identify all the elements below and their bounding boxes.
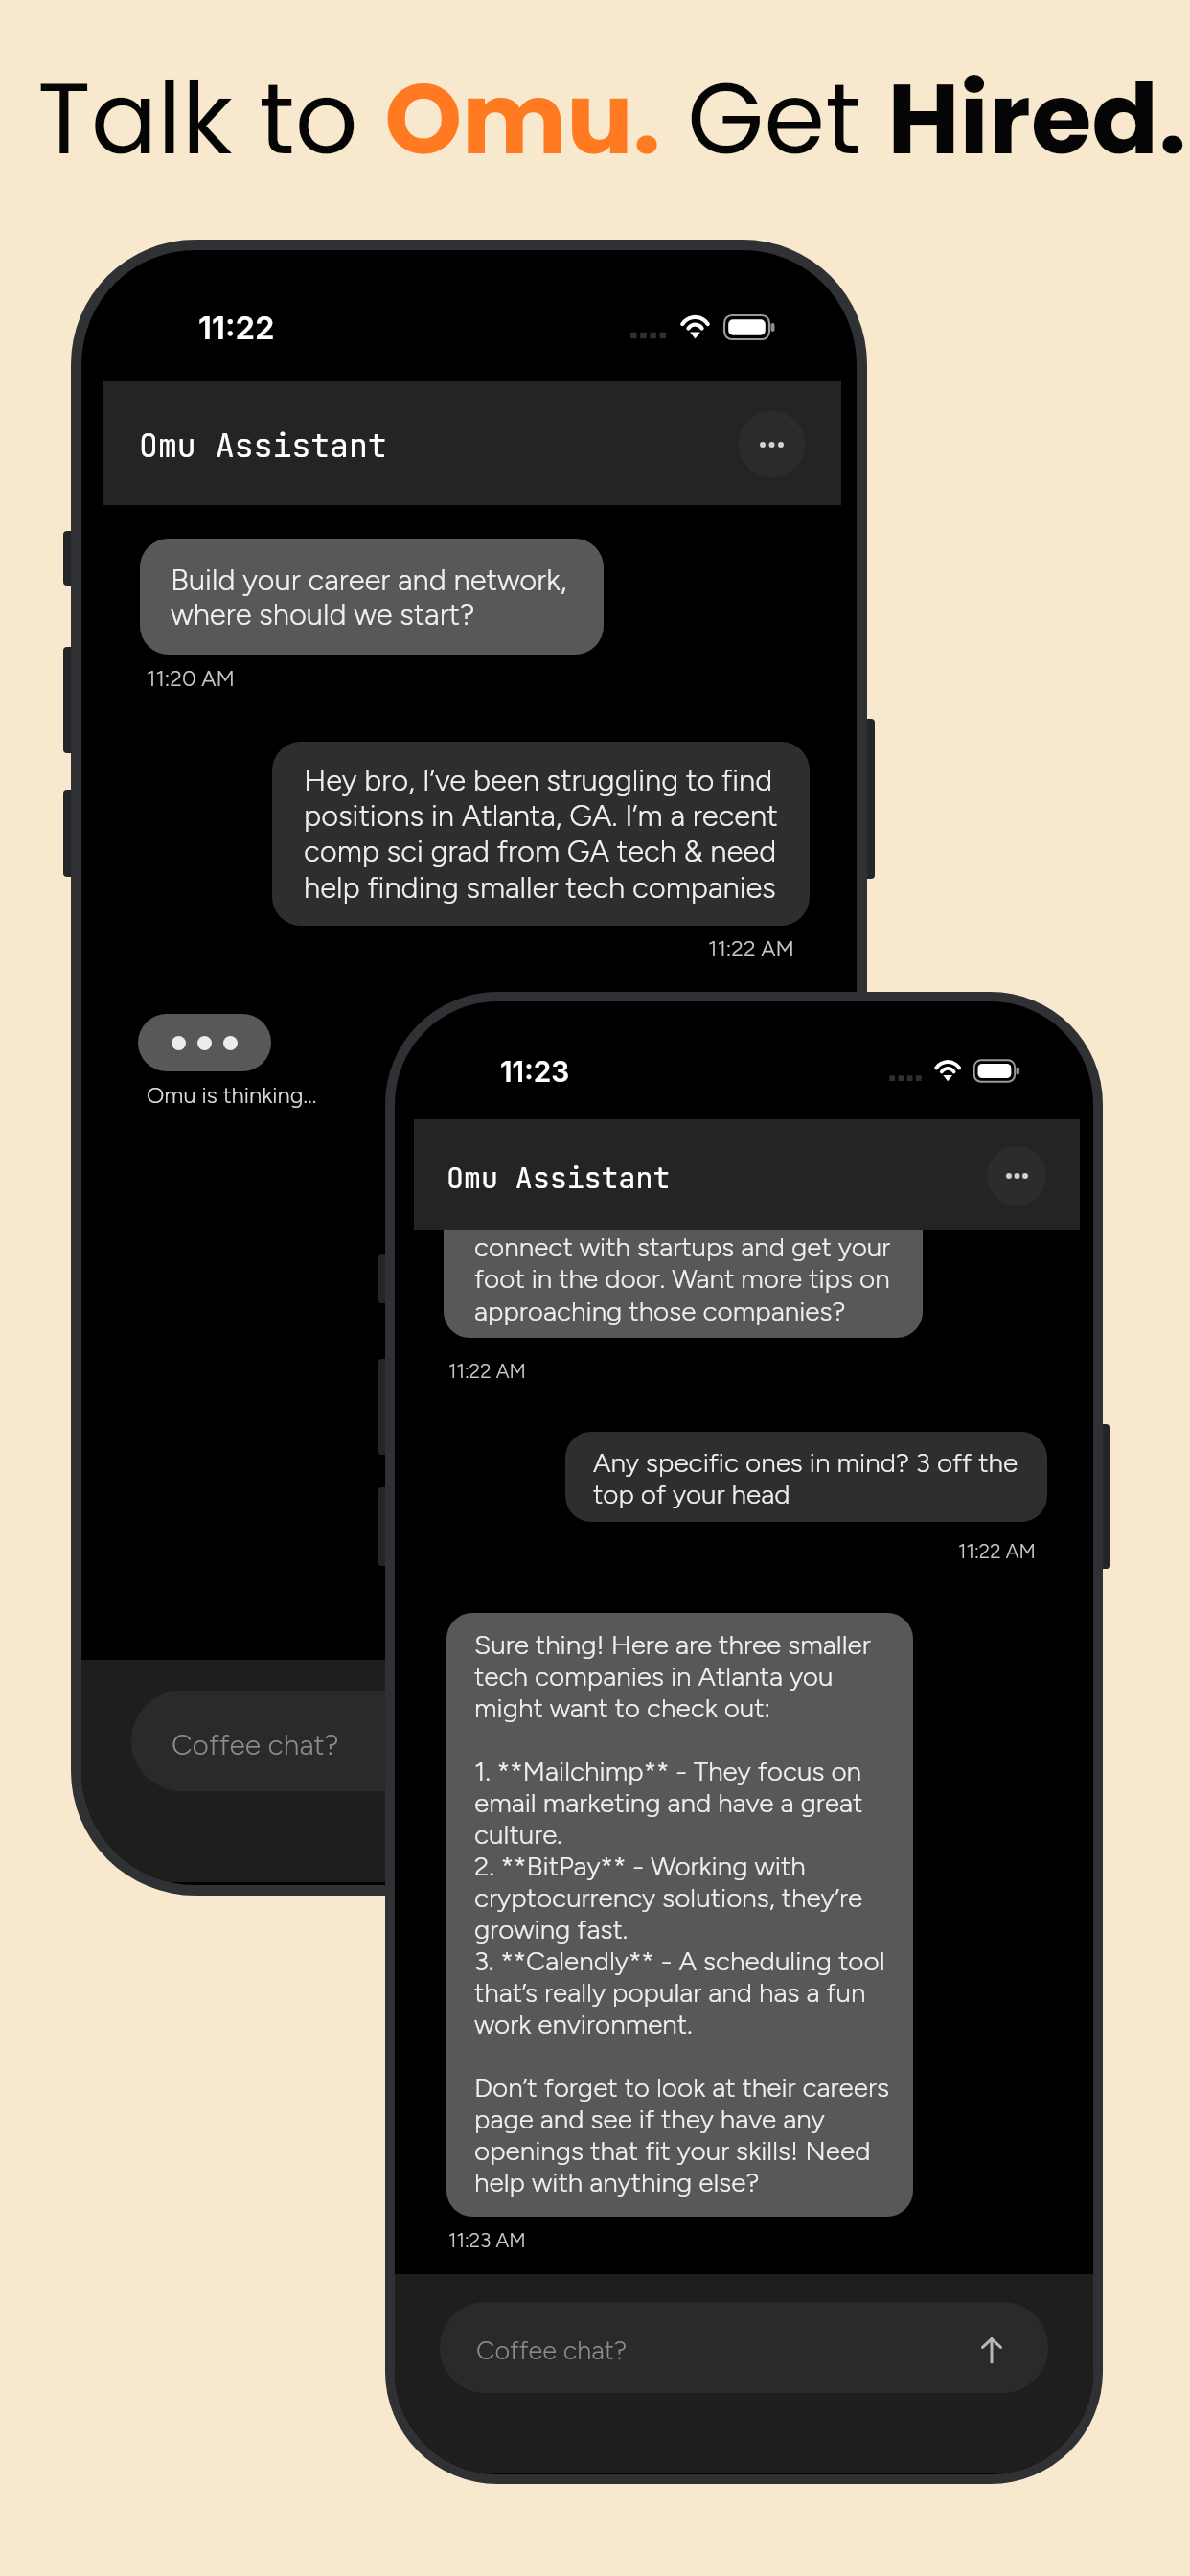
staticText: top of your head [593,1478,790,1510]
staticText: Coffee chat? [476,2334,628,2365]
button[interactable]: More options [739,411,805,477]
staticText: 11:22 AM [958,1539,1036,1563]
staticText: where should we start? [171,597,475,632]
button[interactable]: Omu Assistant [103,381,841,505]
staticText: openings that fit your skills! Need [474,2134,871,2167]
button[interactable]: Coffee chat? [131,1690,807,1791]
staticText: 3. **Calendly** - A scheduling tool [474,1944,885,1977]
button[interactable]: Hey bro, I’ve been struggling to find [272,742,810,926]
staticText: Omu is thinking... [147,1081,317,1109]
staticText: 1. **Mailchimp** - They focus on [474,1755,862,1787]
staticText: might want to check out: [474,1691,771,1724]
staticText: culture. [474,1818,562,1851]
staticText: 11:22 [198,309,275,347]
button[interactable]: Any specific ones in mind? 3 off the [565,1432,1047,1522]
staticText: Don’t forget to look at their careers [474,2071,889,2104]
staticText: help with anything else? [474,2166,760,2198]
staticText: email marketing and have a great [474,1786,863,1819]
staticText: growing fast. [474,1913,629,1945]
staticText: tech companies in Atlanta you [474,1660,834,1692]
staticText: Any specific ones in mind? 3 off the [593,1446,1018,1479]
button[interactable]: Omu Assistant [414,1119,1080,1230]
button[interactable] [138,1014,271,1071]
staticText: Omu Assistant [446,1159,671,1196]
staticText: Hey bro, I’ve been struggling to find [304,763,773,798]
button[interactable]: Sure thing! Here are three smaller [446,1613,913,2217]
staticText: work environment. [474,2008,693,2040]
button[interactable]: Send message [965,2323,1018,2377]
staticText: 2. **BitPay** - Working with [474,1850,806,1882]
staticText: Build your career and network, [171,563,567,598]
staticText: help finding smaller tech companies [304,870,776,906]
button[interactable]: Build your career and network, [140,539,604,655]
button[interactable]: Coffee chat? [440,2302,1048,2393]
staticText: positions in Atlanta, GA. I’m a recent [304,798,778,834]
staticText: 11:22 AM [708,935,794,962]
staticText: foot in the door. Want more tips on [474,1262,890,1295]
staticText: Sure thing! Here are three smaller [474,1628,871,1661]
staticText: Omu Assistant [139,425,387,467]
staticText: connect with startups and get your [474,1230,891,1263]
button[interactable]: More options [987,1146,1046,1206]
staticText: approaching those companies? [474,1295,846,1327]
staticText: 11:22 AM [448,1359,526,1383]
button[interactable]: connect with startups and get your [444,1193,923,1338]
staticText: that’s really popular and has a fun [474,1976,866,2009]
staticText: page and see if they have any [474,2103,825,2135]
staticText: Coffee chat? [172,1727,339,1761]
staticText: comp sci grad from GA tech & need [304,834,777,869]
staticText: Talk to Omu. Get Hired. [37,50,1187,188]
staticText: 11:23 [500,1054,570,1089]
staticText: cryptocurrency solutions, they’re [474,1881,863,1914]
staticText: 11:20 AM [147,665,235,692]
staticText: 11:23 AM [448,2228,526,2252]
